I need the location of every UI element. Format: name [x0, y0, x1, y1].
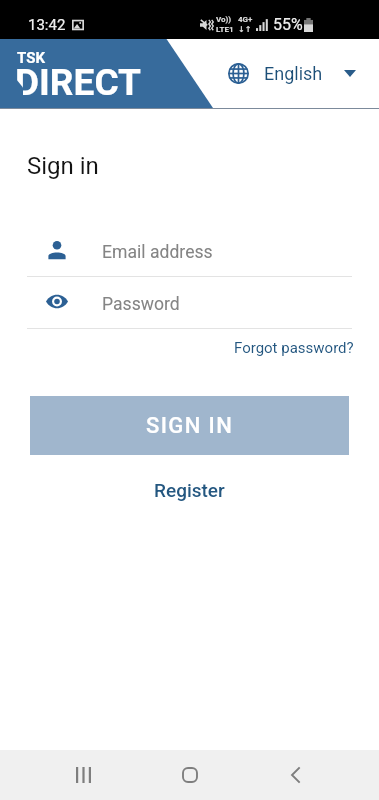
button[interactable]: Password — [27, 277, 352, 328]
staticText: Vo)) — [216, 15, 232, 24]
staticText: 4G+ — [238, 15, 253, 24]
button[interactable]: Email address — [27, 225, 352, 276]
button[interactable]: Home — [155, 750, 225, 800]
staticText: Register — [154, 479, 225, 501]
staticText: 13:42 — [28, 16, 66, 34]
button[interactable]: Register — [146, 475, 233, 505]
button[interactable]: Forgot password? — [232, 337, 356, 359]
staticText: English — [264, 63, 323, 84]
staticText: DIRECT — [15, 61, 141, 104]
staticText: Email address — [102, 242, 213, 263]
staticText: Password — [102, 294, 180, 315]
button[interactable]: Back — [260, 750, 330, 800]
button[interactable]: English — [228, 63, 356, 84]
staticText: TSK — [17, 49, 45, 67]
staticText: Forgot password? — [234, 339, 354, 357]
staticText: Sign in — [27, 152, 99, 180]
staticText: LTE1 — [216, 25, 234, 34]
staticText: ↓↑ — [238, 25, 252, 34]
other: Change language — [344, 70, 356, 77]
staticText: 55% — [273, 15, 303, 34]
staticText: SIGN IN — [146, 413, 234, 439]
button[interactable]: Recents — [48, 750, 118, 800]
button[interactable]: SIGN IN — [30, 396, 349, 455]
